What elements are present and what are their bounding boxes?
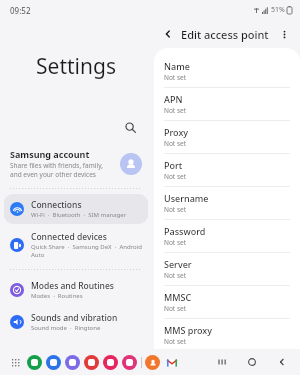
staticText: MMS proxy xyxy=(164,324,212,336)
staticText: Server xyxy=(164,258,192,270)
staticText: Port xyxy=(164,159,183,171)
button[interactable]: Name xyxy=(154,55,300,87)
button[interactable]: Proxy xyxy=(154,121,300,153)
staticText: MMSC xyxy=(164,291,192,303)
staticText: Not set xyxy=(164,73,187,82)
button[interactable]: Username xyxy=(154,187,300,219)
staticText: Sound mode · Ringtone xyxy=(31,324,101,332)
button[interactable]: App xyxy=(122,355,137,370)
button[interactable]: App xyxy=(65,355,80,370)
staticText: Share files with friends, family, and ev… xyxy=(10,161,114,179)
staticText: Not set xyxy=(164,205,187,214)
staticText: Not set xyxy=(164,172,187,181)
button[interactable]: Connected devices xyxy=(4,226,148,264)
button[interactable]: Samsung account xyxy=(0,143,152,184)
staticText: 09:52 xyxy=(10,5,31,16)
staticText: Connected devices xyxy=(31,231,107,243)
staticText: Modes and Routines xyxy=(31,280,114,292)
staticText: Wi-Fi · Bluetooth · SIM manager xyxy=(31,211,127,219)
staticText: Modes · Routines xyxy=(31,292,83,300)
button[interactable]: Back xyxy=(160,26,176,42)
button[interactable]: App xyxy=(103,355,118,370)
staticText: Quick Share · Samsung DeX · Android Auto xyxy=(31,243,142,259)
button[interactable]: More options xyxy=(276,26,292,42)
button[interactable]: Server xyxy=(154,253,300,285)
button[interactable]: App xyxy=(46,355,61,370)
staticText: 51% xyxy=(271,5,285,15)
button[interactable]: Connections xyxy=(4,194,148,224)
button[interactable]: Password xyxy=(154,220,300,252)
staticText: Password xyxy=(164,225,206,237)
staticText: Not set xyxy=(164,337,187,344)
button[interactable]: Contacts xyxy=(145,355,160,370)
staticText: Proxy xyxy=(164,126,189,138)
button[interactable]: All apps xyxy=(8,355,22,369)
button[interactable]: APN xyxy=(154,88,300,120)
staticText: Not set xyxy=(164,238,187,247)
button[interactable]: Modes and Routines xyxy=(4,275,148,305)
button[interactable]: Back xyxy=(274,354,290,370)
staticText: Connections xyxy=(31,199,82,211)
staticText: Not set xyxy=(164,106,187,115)
button[interactable]: Home xyxy=(244,354,260,370)
staticText: Samsung account xyxy=(10,148,90,160)
staticText: Settings xyxy=(0,52,152,81)
button[interactable]: Port xyxy=(154,154,300,186)
button[interactable]: Recents xyxy=(214,354,230,370)
staticText: Not set xyxy=(164,304,187,313)
staticText: Name xyxy=(164,60,190,72)
button[interactable]: Sounds and vibration xyxy=(4,307,148,337)
button[interactable]: App xyxy=(27,355,42,370)
staticText: Not set xyxy=(164,139,187,148)
button[interactable]: MMSC xyxy=(154,286,300,318)
staticText: Edit access point xyxy=(181,27,276,42)
staticText: APN xyxy=(164,93,183,105)
button[interactable]: Gmail xyxy=(165,356,178,369)
staticText: Sounds and vibration xyxy=(31,312,118,324)
staticText: Username xyxy=(164,192,209,204)
button[interactable]: Search xyxy=(120,117,140,137)
staticText: Not set xyxy=(164,271,187,280)
button[interactable]: MMS proxy xyxy=(154,319,300,349)
button[interactable]: App xyxy=(84,355,99,370)
